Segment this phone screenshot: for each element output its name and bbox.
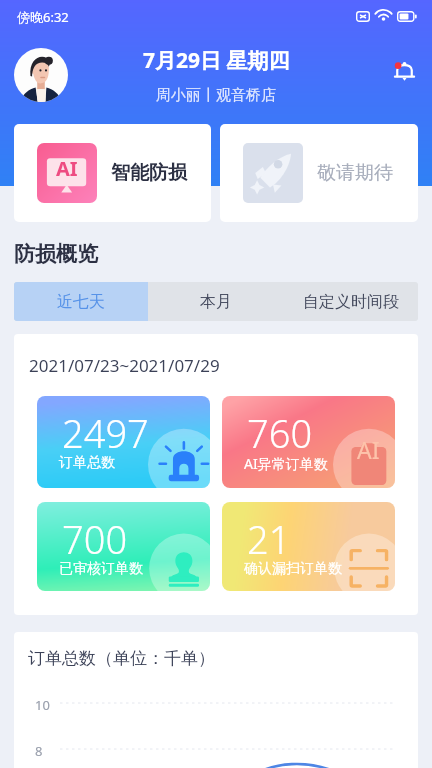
staticText: 近七天 xyxy=(57,292,105,312)
button[interactable]: Profile xyxy=(14,48,68,102)
staticText: 订单总数（单位：千单） xyxy=(28,648,215,669)
button[interactable]: 700 xyxy=(37,502,210,591)
staticText: AI xyxy=(357,434,380,465)
button[interactable]: Notifications xyxy=(390,57,419,86)
staticText: 700 xyxy=(62,513,128,565)
staticText: 确认漏扫订单数 xyxy=(244,560,342,578)
staticText: 已审核订单数 xyxy=(59,560,143,578)
staticText: 10 xyxy=(35,696,50,714)
staticText: 2021/07/23~2021/07/29 xyxy=(29,354,220,377)
button[interactable]: AI xyxy=(14,124,211,222)
staticText: 21 xyxy=(247,513,291,565)
button[interactable]: 敬请期待 xyxy=(220,124,418,222)
staticText: 760 xyxy=(247,407,313,459)
staticText: 本月 xyxy=(200,292,232,312)
staticText: 订单总数 xyxy=(59,454,115,472)
staticText: 防损概览 xyxy=(14,241,98,267)
staticText: AI异常订单数 xyxy=(244,454,328,473)
staticText: 周小丽丨观音桥店 xyxy=(156,86,276,105)
staticText: 自定义时间段 xyxy=(303,292,399,312)
staticText: 2497 xyxy=(62,407,149,459)
button[interactable]: AI xyxy=(222,396,395,488)
button[interactable]: 21 xyxy=(222,502,395,591)
staticText: 8 xyxy=(35,742,43,760)
staticText: 7月29日 星期四 xyxy=(143,46,290,75)
button[interactable]: 近七天 xyxy=(14,282,148,321)
staticText: AI xyxy=(56,155,78,182)
staticText: 傍晚6:32 xyxy=(17,8,69,26)
button[interactable]: 2497 xyxy=(37,396,210,488)
staticText: 敬请期待 xyxy=(317,161,393,185)
staticText: 智能防损 xyxy=(111,161,187,185)
button[interactable]: 本月 xyxy=(148,282,283,321)
button[interactable]: 自定义时间段 xyxy=(283,282,418,321)
